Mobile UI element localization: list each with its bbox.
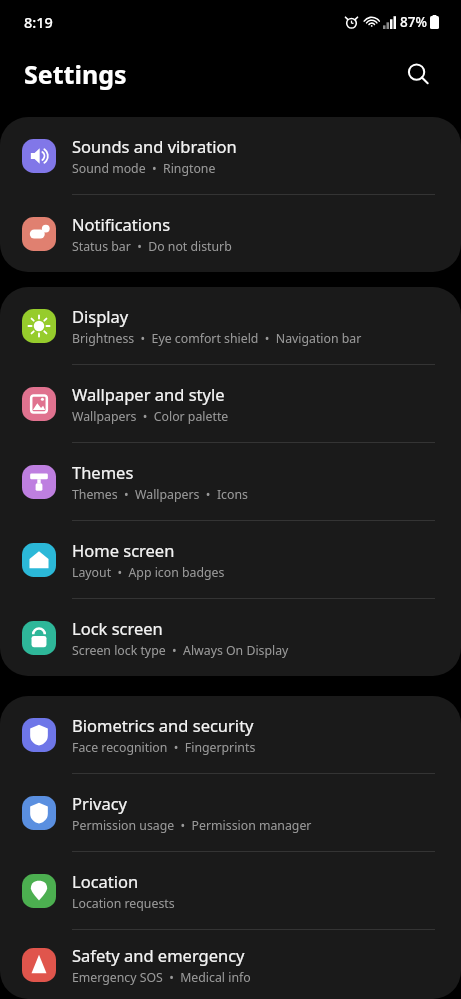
staticText: Biometrics and security	[72, 714, 254, 736]
staticText: Themes	[72, 461, 134, 483]
staticText: Permission usage • Permission manager	[72, 817, 312, 834]
staticText: Location requests	[72, 895, 175, 912]
button[interactable]: Home screen	[0, 521, 461, 598]
staticText: 8:19	[24, 12, 53, 32]
staticText: Notifications	[72, 213, 171, 235]
button[interactable]: Safety and emergency	[0, 930, 461, 999]
staticText: Brightness • Eye comfort shield • Naviga…	[72, 330, 362, 347]
staticText: Location	[72, 870, 139, 892]
button[interactable]: Location	[0, 852, 461, 929]
staticText: Status bar • Do not disturb	[72, 238, 232, 255]
staticText: Wallpapers • Color palette	[72, 408, 229, 425]
button[interactable]: Biometrics and security	[0, 696, 461, 773]
staticText: 87%	[400, 13, 427, 31]
staticText: Display	[72, 305, 129, 327]
staticText: Wallpaper and style	[72, 383, 225, 405]
staticText: Screen lock type • Always On Display	[72, 642, 289, 659]
staticText: Themes • Wallpapers • Icons	[72, 486, 248, 503]
staticText: Face recognition • Fingerprints	[72, 739, 256, 756]
staticText: Safety and emergency	[72, 944, 245, 966]
button[interactable]: Sounds and vibration	[0, 117, 461, 194]
staticText: Settings	[24, 57, 127, 91]
staticText: Privacy	[72, 792, 128, 814]
button[interactable]: Privacy	[0, 774, 461, 851]
staticText: Emergency SOS • Medical info	[72, 969, 251, 986]
staticText: Sound mode • Ringtone	[72, 160, 216, 177]
staticText: Sounds and vibration	[72, 135, 237, 157]
button[interactable]: Lock screen	[0, 599, 461, 676]
button[interactable]: Search	[397, 53, 439, 95]
button[interactable]: Wallpaper and style	[0, 365, 461, 442]
staticText: Lock screen	[72, 617, 163, 639]
staticText: Layout • App icon badges	[72, 564, 225, 581]
button[interactable]: Display	[0, 287, 461, 364]
staticText: Home screen	[72, 539, 175, 561]
button[interactable]: Notifications	[0, 195, 461, 272]
button[interactable]: Themes	[0, 443, 461, 520]
